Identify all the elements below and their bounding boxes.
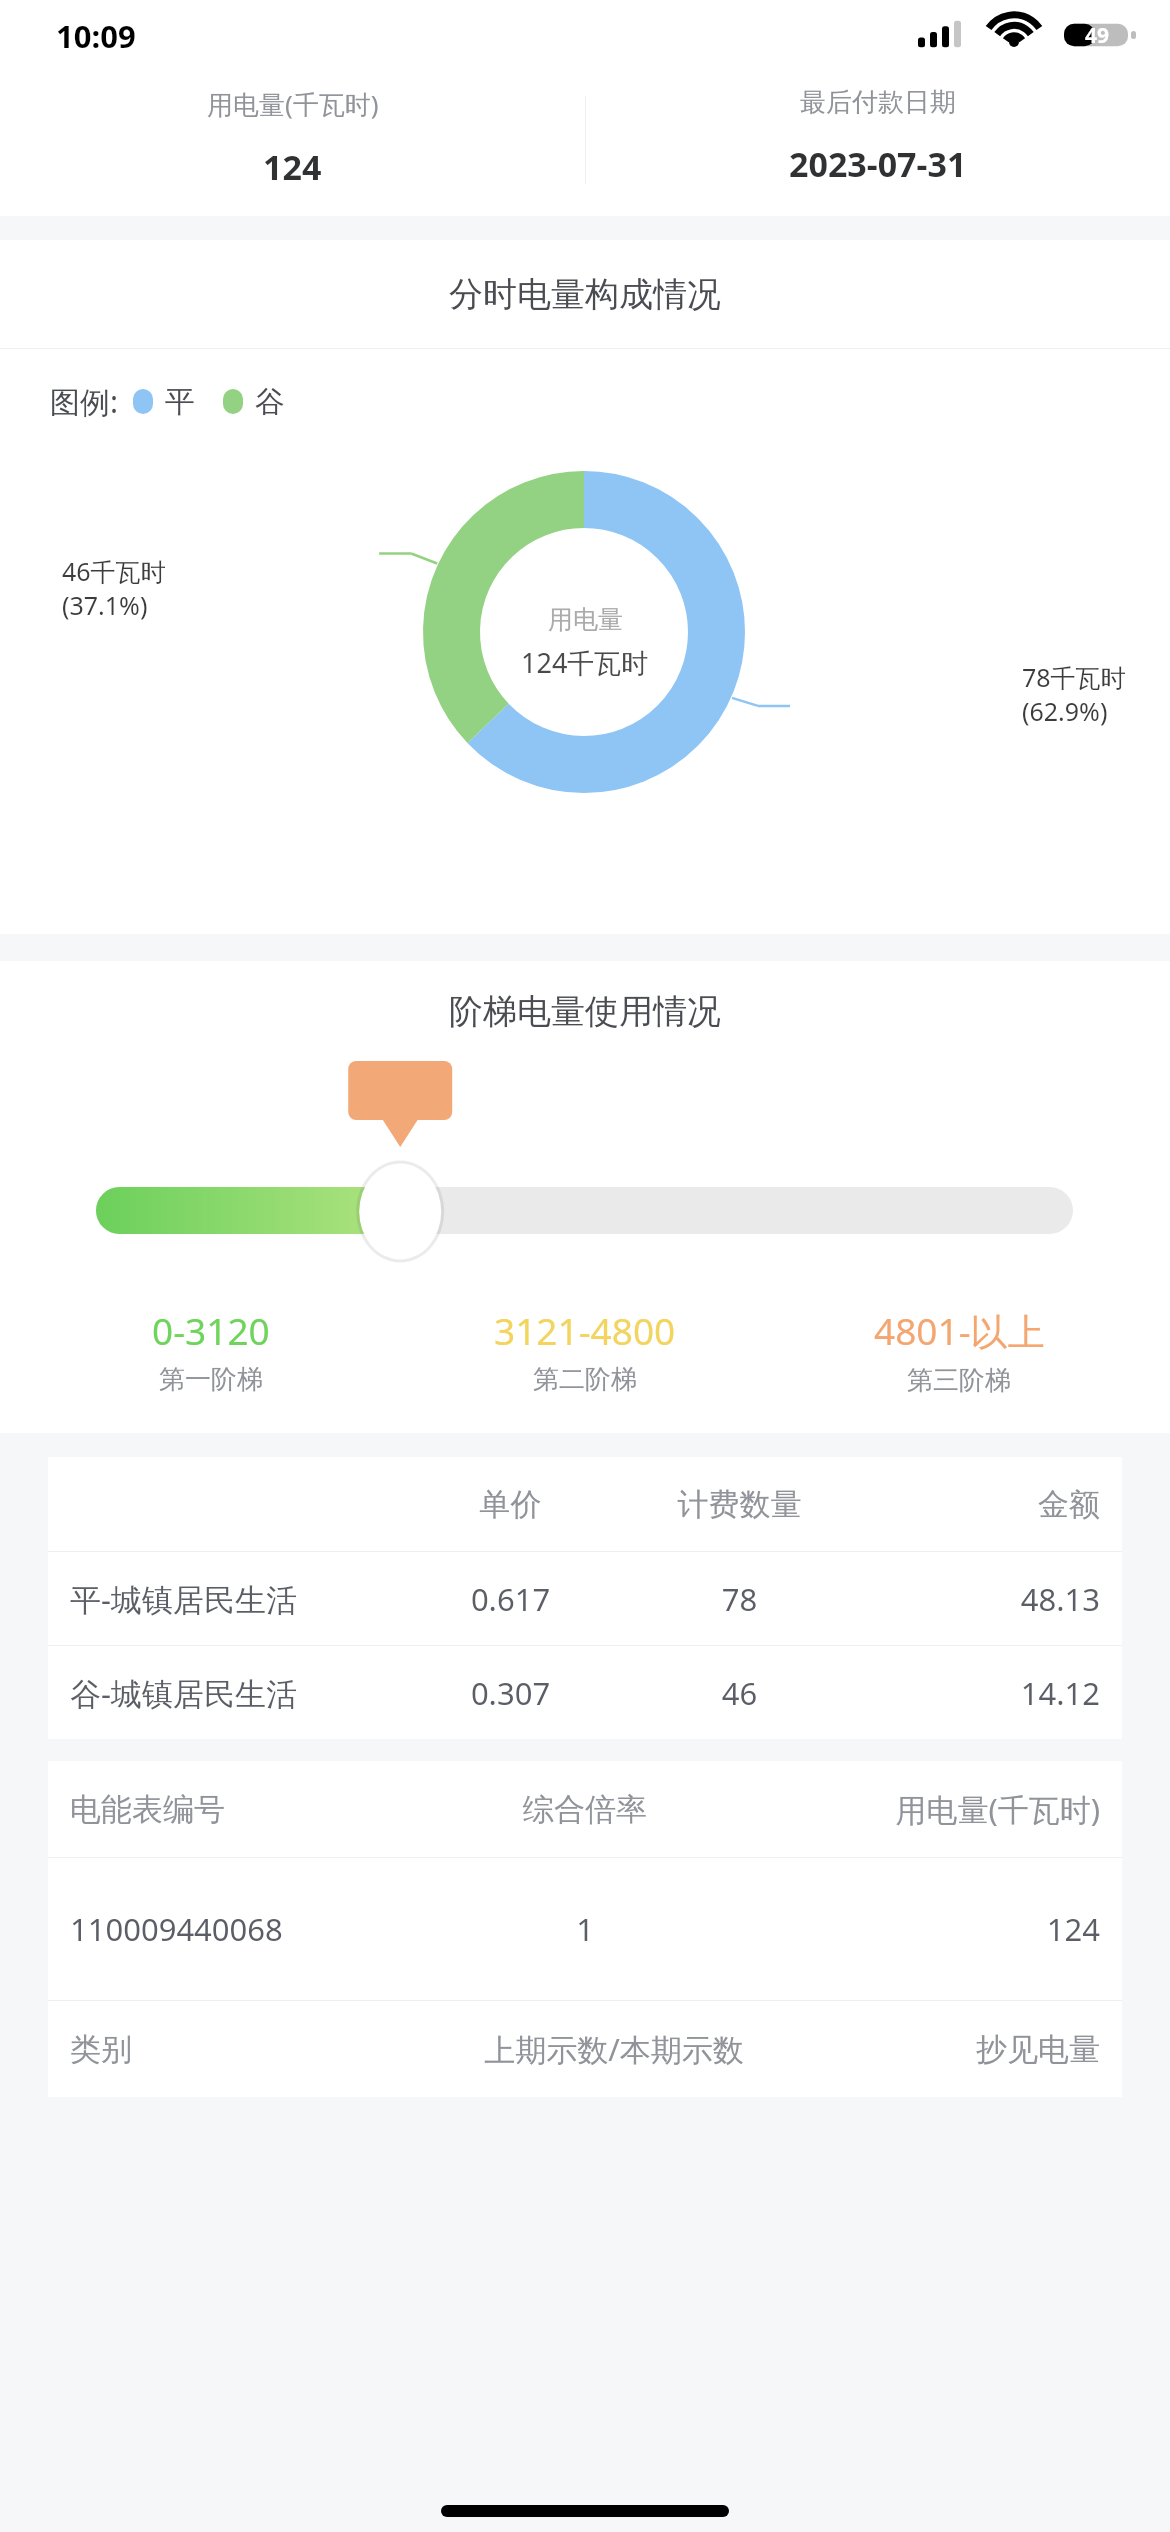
staticText: 48.13	[871, 1578, 1100, 1620]
button[interactable]: 110009440068	[70, 1858, 1100, 2000]
button[interactable]: 最后付款日期	[585, 64, 1170, 216]
staticText: 谷	[255, 383, 285, 421]
staticText: 阶梯电量使用情况	[449, 990, 721, 1033]
button[interactable]: 4801-以上	[772, 1301, 1146, 1433]
staticText: 第二阶梯	[533, 1363, 637, 1396]
staticText: 124	[263, 144, 322, 190]
staticText: 4801-以上	[874, 1305, 1045, 1356]
staticText: 抄见电量	[810, 2030, 1100, 2069]
staticText: 10:09	[56, 15, 136, 57]
staticText: 0-3120	[152, 1305, 270, 1355]
staticText: 计费数量	[608, 1485, 871, 1524]
staticText: 3121-4800	[494, 1305, 676, 1355]
staticText: 14.12	[871, 1672, 1100, 1714]
button[interactable]: 平-城镇居民生活	[70, 1552, 1100, 1645]
staticText: 分时电量构成情况	[449, 273, 721, 316]
button[interactable]: 用电量(千瓦时)	[0, 64, 585, 216]
staticText: 0.307	[413, 1672, 608, 1714]
staticText: 平	[165, 383, 195, 421]
staticText: 124千瓦时	[521, 644, 649, 681]
staticText: 综合倍率	[438, 1790, 732, 1829]
staticText: 78千瓦时	[1022, 660, 1126, 694]
staticText: 谷-城镇居民生活	[70, 1672, 413, 1714]
staticText: 110009440068	[70, 1908, 438, 1950]
button[interactable]: 0-3120	[24, 1301, 398, 1433]
staticText: 第三阶梯	[907, 1364, 1011, 1397]
button[interactable]: 谷-城镇居民生活	[70, 1646, 1100, 1739]
staticText: 类别	[70, 2030, 418, 2069]
staticText: 单价	[413, 1485, 608, 1524]
staticText: (37.1%)	[62, 588, 148, 622]
staticText: 46	[608, 1672, 871, 1714]
staticText: 最后付款日期	[800, 86, 956, 119]
staticText: 78	[608, 1578, 871, 1620]
staticText: (62.9%)	[1022, 694, 1108, 728]
staticText: 上期示数/本期示数	[418, 2028, 810, 2070]
staticText: 金额	[871, 1485, 1100, 1524]
staticText: 124	[732, 1908, 1100, 1950]
staticText: 图例:	[50, 381, 119, 422]
staticText: 用电量	[548, 604, 623, 635]
staticText: 第一阶梯	[159, 1363, 263, 1396]
staticText: 49	[1085, 21, 1110, 50]
staticText: 平-城镇居民生活	[70, 1578, 413, 1620]
staticText: 用电量(千瓦时)	[732, 1788, 1100, 1830]
staticText: 0.617	[413, 1578, 608, 1620]
staticText: 1	[438, 1908, 732, 1950]
staticText: 2023-07-31	[789, 141, 967, 187]
button[interactable]: 3121-4800	[398, 1301, 772, 1433]
staticText: 46千瓦时	[62, 554, 166, 588]
staticText: 用电量(千瓦时)	[207, 86, 379, 122]
staticText: 电能表编号	[70, 1790, 438, 1829]
button[interactable]: 阶梯电量滑块 2179	[0, 1061, 1170, 1301]
